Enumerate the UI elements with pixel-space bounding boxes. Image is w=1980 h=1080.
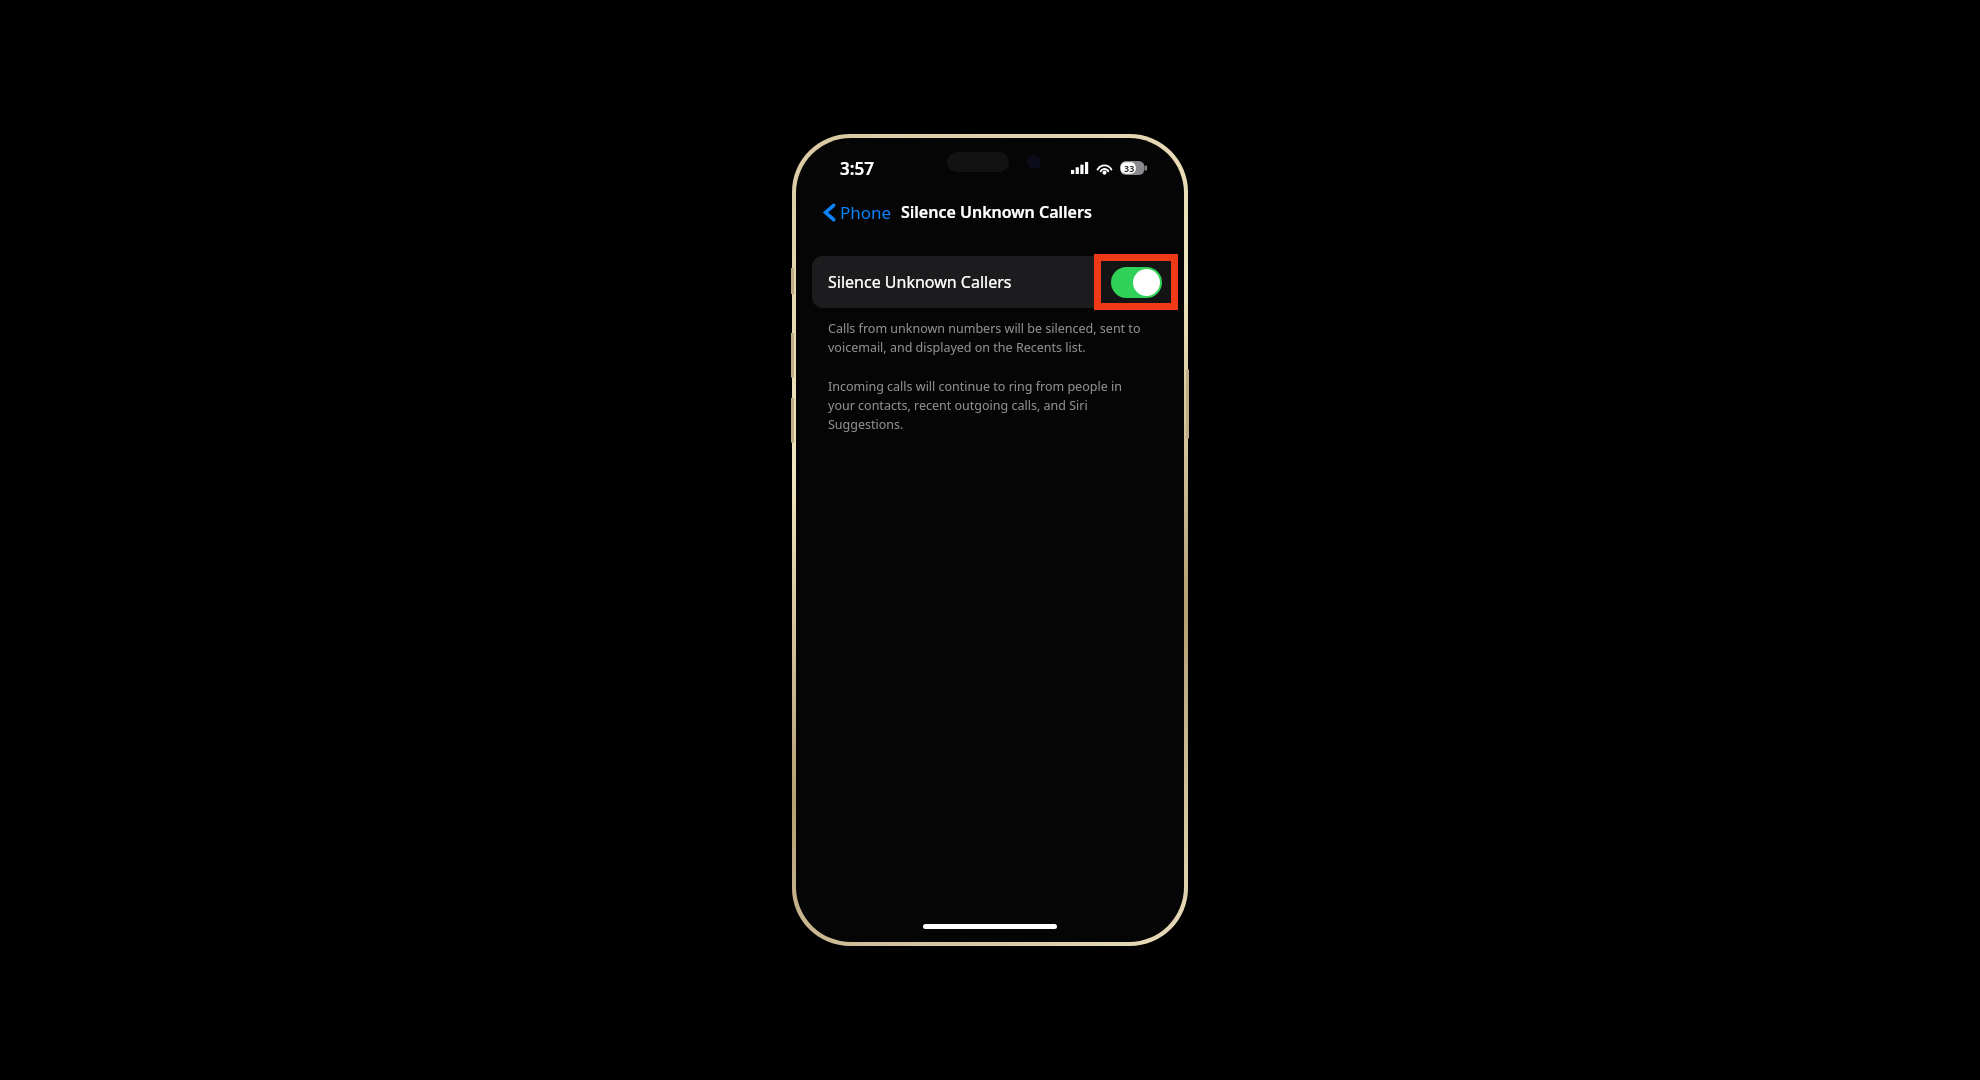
- staticText: Incoming calls will continue to ring fro…: [828, 378, 1148, 433]
- button[interactable]: Phone: [820, 198, 896, 227]
- staticText: Silence Unknown Callers: [901, 201, 1092, 223]
- staticText: Calls from unknown numbers will be silen…: [828, 320, 1148, 356]
- staticText: 3:57: [840, 157, 874, 180]
- staticText: Silence Unknown Callers: [828, 271, 1012, 293]
- button[interactable]: Silence Unknown Callers toggle, on: [1111, 267, 1162, 298]
- button[interactable]: Silence Unknown Callers: [812, 256, 1172, 308]
- staticText: Phone: [840, 201, 892, 224]
- staticText: 33: [1124, 162, 1135, 174]
